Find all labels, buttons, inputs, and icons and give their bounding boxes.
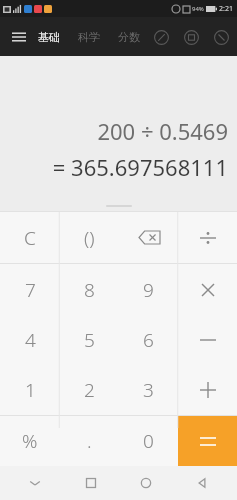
staticText: 6 (143, 327, 154, 353)
button[interactable]: 6 (119, 315, 178, 365)
button[interactable] (178, 315, 237, 365)
button[interactable]: Delete (119, 212, 178, 263)
staticText: 0 (143, 428, 154, 454)
staticText: 2 (84, 377, 95, 403)
staticText: . (87, 428, 92, 454)
button[interactable]: 5 (60, 315, 119, 365)
button[interactable] (178, 365, 237, 415)
button[interactable]: 3 (119, 365, 178, 415)
button[interactable]: 8 (60, 264, 119, 315)
button[interactable]: Memory (180, 26, 202, 48)
staticText: 2:21 (219, 4, 233, 14)
staticText: () (84, 225, 95, 251)
button[interactable]: 7 (0, 264, 60, 315)
staticText: 5 (84, 327, 95, 353)
button[interactable]: 2 (60, 365, 119, 415)
staticText: 4 (25, 327, 36, 353)
button[interactable]: 基础 (36, 26, 62, 48)
staticText: 94% (192, 5, 204, 13)
button[interactable]: Recent apps (71, 468, 111, 498)
button[interactable]: 4 (0, 315, 60, 365)
staticText: 7 (25, 277, 36, 303)
button[interactable]: % (0, 416, 60, 466)
staticText: C (24, 225, 36, 251)
button[interactable]: 0 (119, 416, 178, 466)
staticText: 基础 (38, 30, 60, 44)
button[interactable]: Home (126, 468, 166, 498)
staticText: 9 (143, 277, 154, 303)
button[interactable]: History (150, 26, 172, 48)
button[interactable]: C (0, 212, 60, 263)
button[interactable]: Menu (6, 24, 32, 50)
staticText: = 365.697568111 (52, 152, 228, 182)
button[interactable]: 1 (0, 365, 60, 415)
button[interactable]: Hide keyboard (15, 468, 55, 498)
staticText: 科学 (78, 30, 100, 44)
button[interactable]: () (60, 212, 119, 263)
button[interactable]: 科学 (76, 26, 102, 48)
button[interactable] (178, 416, 237, 466)
staticText: 8 (84, 277, 95, 303)
button[interactable] (178, 264, 237, 315)
button[interactable] (178, 212, 237, 263)
staticText: 3 (143, 377, 154, 403)
staticText: 分数 (118, 30, 140, 44)
button[interactable]: 分数 (116, 26, 142, 48)
button[interactable]: 9 (119, 264, 178, 315)
staticText: 200 ÷ 0.5469 (97, 116, 228, 146)
staticText: % (22, 428, 38, 454)
staticText: 1 (25, 377, 36, 403)
button[interactable]: More (210, 26, 232, 48)
button[interactable]: Back (182, 468, 222, 498)
